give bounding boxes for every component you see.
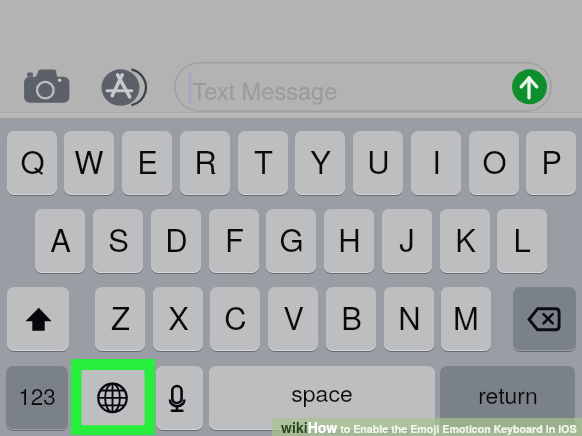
staticText: 123: [18, 379, 56, 411]
button[interactable]: space: [209, 366, 435, 429]
staticText: Z: [111, 294, 130, 338]
button[interactable]: Z: [95, 287, 145, 350]
button[interactable]: V: [268, 287, 318, 350]
staticText: B: [341, 294, 362, 338]
staticText: A: [50, 216, 71, 260]
button[interactable]: S: [93, 209, 143, 272]
button[interactable]: O: [469, 131, 519, 194]
button[interactable]: Y: [295, 131, 345, 194]
staticText: M: [453, 294, 479, 338]
button[interactable]: T: [238, 131, 288, 194]
staticText: return: [478, 378, 538, 411]
button[interactable]: G: [266, 209, 316, 272]
staticText: D: [165, 216, 188, 260]
staticText: K: [455, 216, 476, 260]
staticText: G: [279, 216, 304, 260]
staticText: S: [108, 216, 129, 260]
button[interactable]: X: [153, 287, 203, 350]
button[interactable]: E: [122, 131, 172, 194]
button[interactable]: 123: [6, 366, 68, 429]
button[interactable]: F: [209, 209, 259, 272]
button[interactable]: Camera: [20, 66, 74, 108]
button[interactable]: D: [151, 209, 201, 272]
button[interactable]: I: [411, 131, 461, 194]
button[interactable]: Backspace: [513, 287, 576, 350]
staticText: space: [291, 376, 353, 409]
button[interactable]: H: [324, 209, 374, 272]
staticText: N: [398, 294, 421, 338]
staticText: Text Message: [192, 73, 338, 107]
staticText: wikiHow to Enable the Emoji Emoticon Key…: [281, 417, 577, 436]
button[interactable]: App Store: [99, 66, 149, 108]
button[interactable]: J: [382, 209, 432, 272]
button[interactable]: A: [35, 209, 85, 272]
staticText: V: [283, 294, 304, 338]
staticText: F: [225, 216, 244, 260]
staticText: E: [137, 138, 158, 182]
staticText: U: [367, 138, 390, 182]
button[interactable]: Send: [511, 68, 549, 106]
staticText: Q: [20, 138, 45, 182]
staticText: W: [74, 138, 104, 182]
staticText: O: [482, 138, 507, 182]
button[interactable]: K: [440, 209, 490, 272]
button[interactable]: M: [441, 287, 491, 350]
button[interactable]: Dictate: [156, 366, 203, 429]
button[interactable]: C: [210, 287, 260, 350]
button[interactable]: B: [326, 287, 376, 350]
staticText: L: [513, 216, 531, 260]
button[interactable]: Text Message: [174, 62, 552, 112]
staticText: H: [338, 216, 361, 260]
button[interactable]: L: [497, 209, 547, 272]
staticText: T: [254, 138, 273, 182]
button[interactable]: Next keyboard: [78, 366, 146, 429]
button[interactable]: Shift: [7, 287, 69, 350]
staticText: Y: [310, 138, 331, 182]
button[interactable]: U: [353, 131, 403, 194]
button[interactable]: R: [180, 131, 230, 194]
button[interactable]: P: [526, 131, 576, 194]
staticText: C: [224, 294, 247, 338]
staticText: X: [168, 294, 189, 338]
button[interactable]: N: [384, 287, 434, 350]
button[interactable]: return: [440, 366, 575, 429]
button[interactable]: W: [64, 131, 114, 194]
staticText: P: [541, 138, 562, 182]
staticText: I: [432, 138, 441, 182]
staticText: R: [194, 138, 217, 182]
button[interactable]: Q: [7, 131, 57, 194]
staticText: J: [399, 216, 415, 260]
